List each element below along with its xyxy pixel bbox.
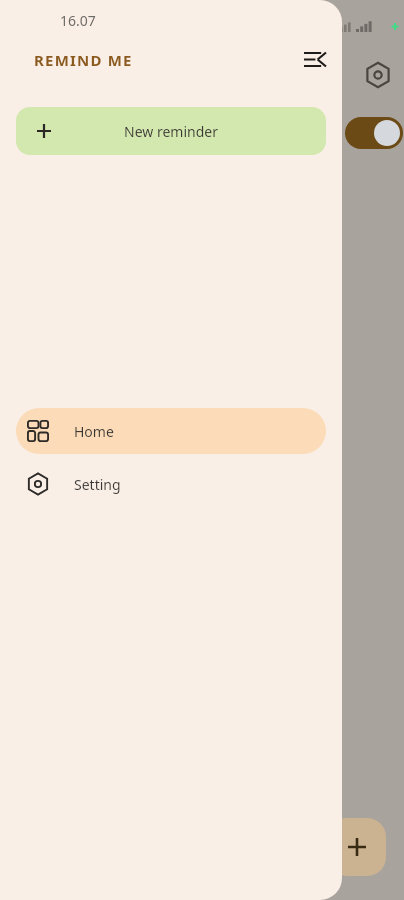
staticText: New reminder bbox=[124, 122, 218, 141]
button[interactable]: Add reminder bbox=[328, 818, 386, 876]
staticText: REMIND ME bbox=[34, 50, 133, 70]
button[interactable]: Setting bbox=[16, 461, 326, 507]
button[interactable]: Settings bbox=[360, 57, 396, 93]
button[interactable]: Home bbox=[16, 408, 326, 454]
staticText: Home bbox=[74, 422, 114, 441]
staticText: 16.07 bbox=[60, 11, 96, 30]
button[interactable]: Close navigation menu bbox=[292, 40, 338, 80]
staticText: Setting bbox=[74, 475, 121, 494]
button[interactable]: New reminder bbox=[16, 107, 326, 155]
button[interactable]: Toggle bbox=[345, 117, 403, 149]
